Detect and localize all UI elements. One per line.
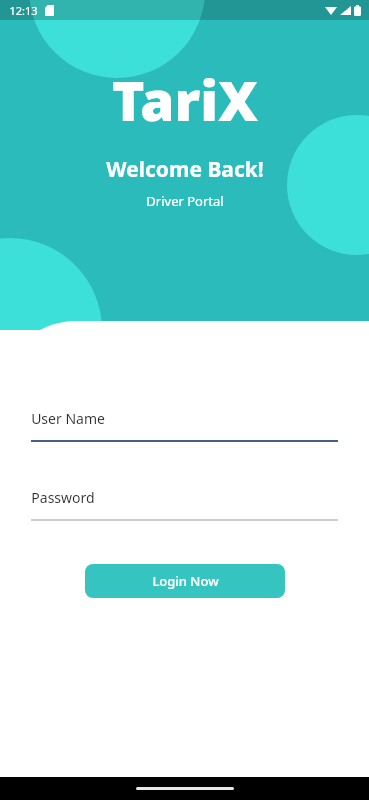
button[interactable]: Login Now — [85, 564, 285, 598]
button[interactable]: User Name — [31, 398, 338, 442]
staticText: Driver Portal — [146, 192, 224, 210]
staticText: User Name — [31, 409, 105, 428]
staticText: Login Now — [152, 572, 219, 590]
button[interactable]: Password — [31, 488, 338, 521]
staticText: 12:13 — [9, 3, 38, 18]
staticText: Welcome Back! — [106, 155, 264, 184]
staticText: TariX — [112, 62, 258, 137]
staticText: Password — [31, 488, 95, 507]
